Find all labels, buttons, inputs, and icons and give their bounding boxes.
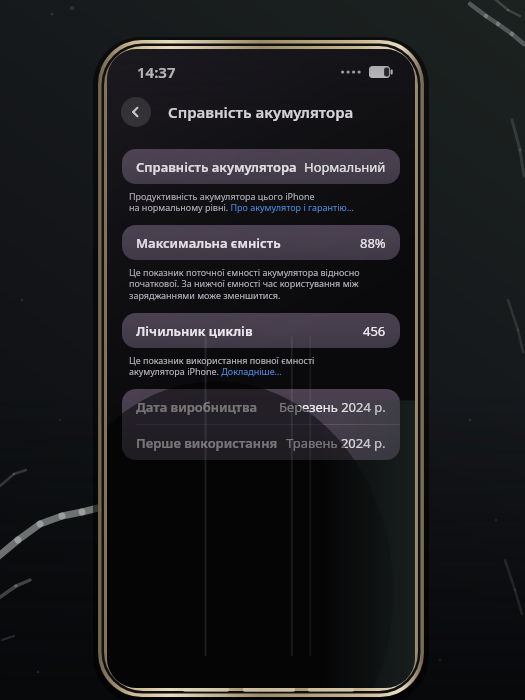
- button[interactable]: Back: [121, 97, 151, 127]
- staticText: Перше використання: [136, 434, 278, 452]
- staticText: Це показник поточної ємності акумулятора…: [129, 266, 360, 302]
- staticText: 456: [363, 322, 386, 340]
- staticText: 14:37: [137, 62, 176, 82]
- button[interactable]: Дата виробництва: [122, 389, 400, 460]
- staticText: Дата виробництва: [136, 398, 258, 416]
- staticText: Це показник використання повної ємності …: [129, 354, 315, 378]
- staticText: Продуктивність акумулятора цього iPhone …: [129, 190, 354, 214]
- button[interactable]: Лічильник циклів: [122, 313, 400, 348]
- staticText: Березень 2024 р.: [279, 398, 386, 416]
- staticText: Справність акумулятора: [136, 158, 297, 176]
- button[interactable]: Максимальна ємність: [122, 225, 400, 260]
- staticText: Нормальний: [304, 158, 386, 176]
- staticText: Справність акумулятора: [168, 102, 354, 122]
- staticText: Лічильник циклів: [136, 322, 253, 340]
- button[interactable]: Справність акумулятора: [122, 149, 400, 184]
- staticText: 88%: [360, 234, 386, 252]
- staticText: Травень 2024 р.: [286, 434, 386, 452]
- staticText: Максимальна ємність: [136, 234, 281, 252]
